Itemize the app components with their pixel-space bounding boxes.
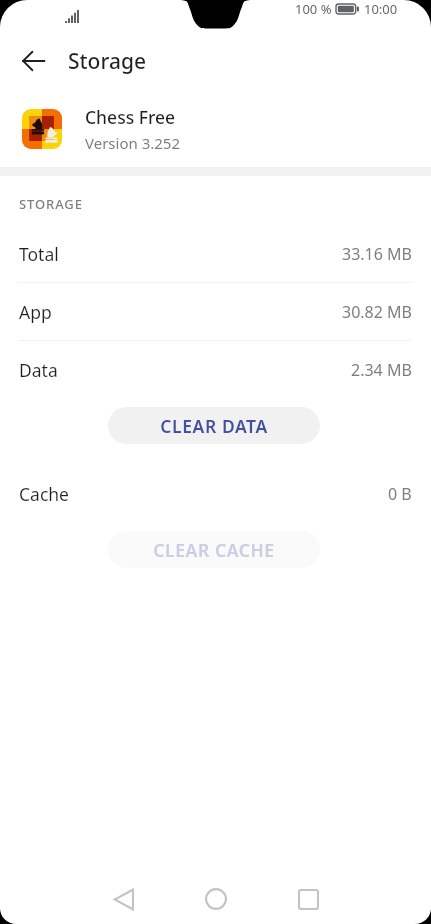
staticText: 33.16 MB (342, 243, 412, 265)
button[interactable]: App (0, 283, 431, 340)
staticText: STORAGE (19, 195, 83, 213)
button[interactable]: Back (11, 39, 55, 83)
staticText: CLEAR DATA (160, 414, 268, 438)
button[interactable]: Cache (0, 479, 431, 509)
staticText: 0 B (388, 483, 412, 505)
button[interactable]: CLEAR CACHE (108, 531, 320, 568)
staticText: 2.34 MB (351, 359, 412, 381)
button[interactable]: Back (96, 874, 152, 924)
button[interactable]: CLEAR DATA (108, 407, 320, 444)
staticText: Cache (19, 482, 69, 506)
staticText: App (19, 300, 52, 324)
button[interactable]: Recents (280, 874, 336, 924)
staticText: Total (19, 242, 59, 266)
staticText: 10:00 (364, 0, 398, 18)
staticText: Data (19, 358, 58, 382)
staticText: Storage (68, 47, 146, 76)
staticText: 100 % (295, 0, 332, 18)
button[interactable]: Total (0, 225, 431, 282)
button[interactable]: Data (0, 341, 431, 398)
staticText: Chess Free (85, 105, 176, 129)
button[interactable]: Home (188, 874, 244, 924)
staticText: 30.82 MB (342, 301, 412, 323)
staticText: CLEAR CACHE (153, 538, 275, 562)
staticText: Version 3.252 (85, 133, 180, 153)
